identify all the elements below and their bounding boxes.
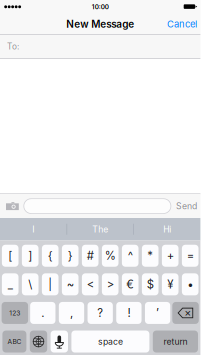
staticText: * — [147, 249, 153, 263]
staticText: = — [187, 249, 194, 263]
button[interactable]: Camera — [0, 197, 24, 215]
staticText: % — [105, 249, 116, 263]
button[interactable]: return — [153, 331, 198, 353]
button[interactable]: Delete — [172, 302, 199, 324]
button[interactable]: ^ — [122, 245, 138, 267]
button[interactable]: = — [182, 245, 198, 267]
button[interactable]: 123 — [2, 302, 28, 324]
staticText: \ — [28, 277, 32, 291]
button[interactable]: ¥ — [162, 273, 178, 295]
staticText: ¥ — [167, 277, 173, 291]
staticText: I — [32, 224, 34, 234]
staticText: ^ — [128, 249, 133, 263]
staticText: 10:00 — [92, 3, 109, 11]
staticText: • — [187, 277, 193, 291]
button[interactable]: To: — [0, 35, 200, 58]
button[interactable]: € — [122, 273, 138, 295]
button[interactable]: % — [102, 245, 118, 267]
staticText: | — [48, 277, 52, 291]
button[interactable]: ’ — [145, 302, 170, 324]
staticText: ’ — [156, 306, 159, 320]
button[interactable]: ] — [22, 245, 38, 267]
button[interactable]: Cancel — [162, 14, 200, 34]
button[interactable]: Hi — [134, 218, 200, 240]
staticText: Hi — [163, 224, 171, 234]
staticText: ] — [28, 249, 32, 263]
staticText: ABC — [7, 337, 21, 346]
button[interactable]: \ — [22, 273, 38, 295]
staticText: [ — [8, 249, 12, 263]
staticText: 123 — [9, 309, 20, 317]
button[interactable]: Next keyboard — [30, 331, 47, 353]
staticText: New Message — [66, 18, 134, 30]
button[interactable]: Dictation — [51, 331, 68, 353]
staticText: Send — [176, 201, 197, 211]
button[interactable]: { — [42, 245, 58, 267]
staticText: # — [87, 249, 94, 263]
button[interactable]: _ — [2, 273, 18, 295]
button[interactable]: } — [62, 245, 78, 267]
button[interactable]: I — [0, 218, 66, 240]
button[interactable]: space — [71, 331, 149, 353]
staticText: $ — [147, 277, 154, 291]
button[interactable]: + — [162, 245, 178, 267]
button[interactable]: # — [82, 245, 98, 267]
staticText: ! — [127, 306, 130, 320]
staticText: To: — [7, 42, 19, 52]
staticText: _ — [8, 277, 13, 291]
button[interactable]: ? — [88, 302, 113, 324]
staticText: < — [87, 277, 94, 291]
button[interactable]: ABC — [2, 331, 26, 353]
button[interactable]: • — [182, 273, 198, 295]
staticText: ? — [97, 306, 103, 320]
staticText: ~ — [67, 277, 74, 291]
button[interactable]: < — [82, 273, 98, 295]
button[interactable]: ~ — [62, 273, 78, 295]
staticText: . — [41, 306, 44, 320]
staticText: } — [68, 249, 73, 263]
staticText: return — [163, 336, 187, 347]
staticText: , — [70, 306, 73, 320]
button[interactable]: . — [30, 302, 55, 324]
button[interactable]: The — [67, 218, 133, 240]
staticText: > — [107, 277, 114, 291]
staticText: × — [184, 306, 191, 319]
button[interactable]: $ — [142, 273, 158, 295]
button[interactable]: | — [42, 273, 58, 295]
staticText: The — [92, 224, 108, 234]
staticText: Cancel — [167, 18, 197, 30]
button[interactable]: Send — [171, 196, 200, 216]
button[interactable]: * — [142, 245, 158, 267]
button[interactable]: , — [59, 302, 84, 324]
staticText: space — [98, 336, 123, 347]
staticText: { — [48, 249, 53, 263]
button[interactable]: > — [102, 273, 118, 295]
button[interactable]: ! — [116, 302, 141, 324]
button[interactable]: [ — [2, 245, 18, 267]
staticText: + — [167, 249, 174, 263]
staticText: € — [126, 277, 134, 291]
